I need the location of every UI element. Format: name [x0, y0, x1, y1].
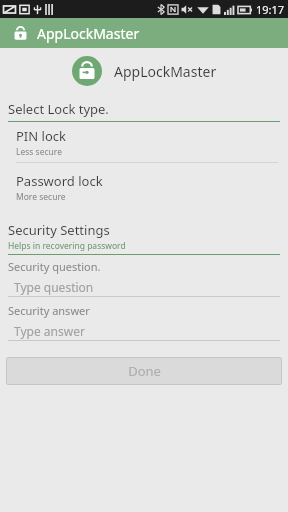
- button[interactable]: Password lock: [0, 167, 288, 211]
- button[interactable]: Done: [6, 357, 282, 385]
- button[interactable]: Type question: [8, 277, 280, 297]
- staticText: Security question.: [8, 259, 101, 274]
- staticText: Helps in recovering password: [8, 240, 126, 252]
- button[interactable]: PIN lock: [0, 122, 288, 167]
- staticText: Type answer: [14, 323, 85, 339]
- staticText: PIN lock: [16, 127, 66, 145]
- staticText: 19:17: [256, 2, 285, 17]
- staticText: Password lock: [16, 172, 103, 190]
- staticText: Less secure: [16, 146, 62, 158]
- staticText: AppLockMaster: [114, 62, 217, 81]
- staticText: Security answer: [8, 303, 90, 318]
- button[interactable]: Type answer: [8, 321, 280, 341]
- staticText: AppLockMaster: [37, 24, 140, 43]
- staticText: Done: [128, 362, 161, 380]
- staticText: Type question: [14, 279, 94, 295]
- staticText: Select Lock type.: [8, 100, 109, 118]
- button[interactable]: AppLockMaster: [0, 18, 288, 48]
- staticText: Security Settings: [8, 221, 110, 239]
- staticText: More secure: [16, 191, 66, 203]
